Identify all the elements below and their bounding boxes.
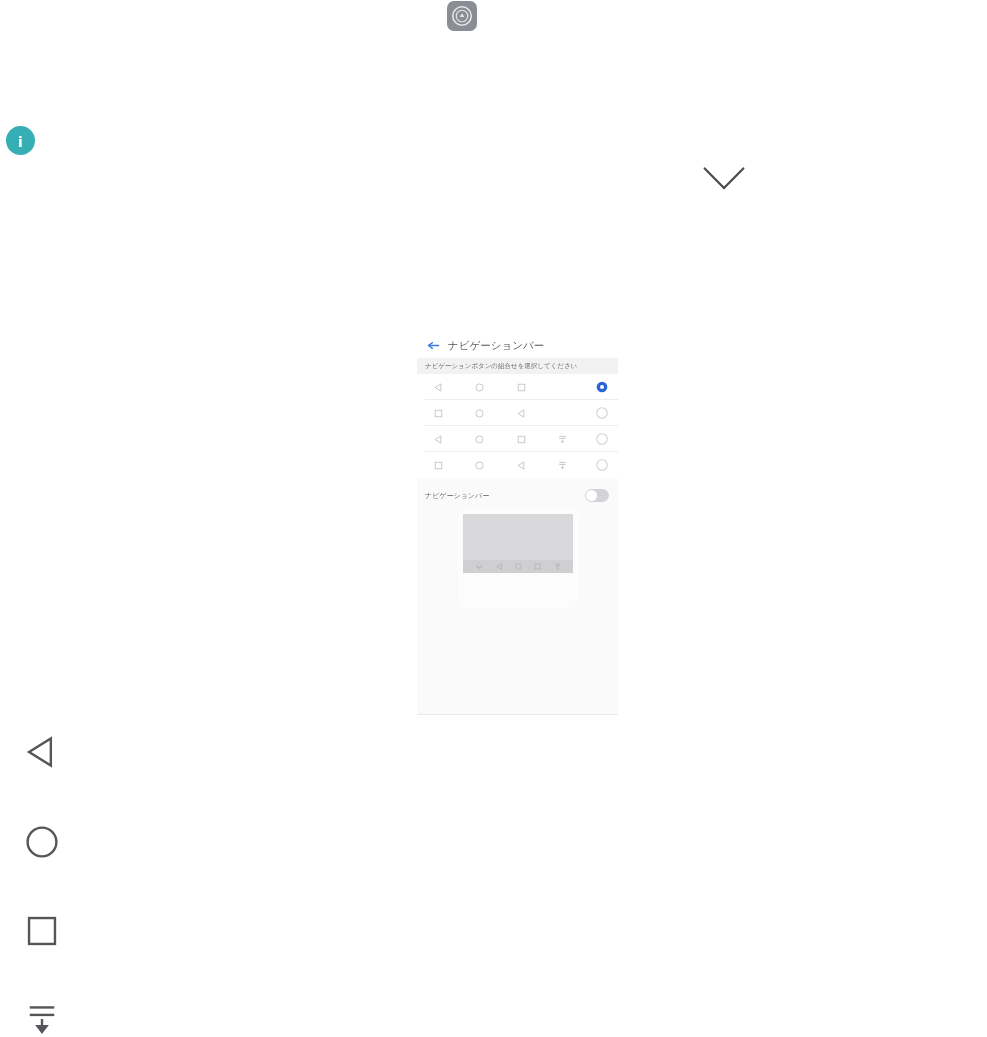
staticText: ナビゲーションボタンの組合せを選択してください [425,362,578,370]
button[interactable]: Home [22,822,62,862]
button[interactable] [417,426,618,452]
button[interactable]: Back [22,732,62,772]
button[interactable]: Hide navigation bar [22,999,62,1037]
button[interactable]: ナビゲーションバー [417,484,618,506]
button[interactable]: Back [426,338,440,352]
button[interactable] [417,400,618,426]
staticText: ナビゲーションバー [448,339,545,352]
button[interactable]: Recent apps [22,911,62,951]
button[interactable] [417,452,618,478]
button[interactable] [417,374,618,400]
staticText: i [18,131,23,151]
button[interactable]: Expand [702,165,746,191]
button[interactable]: Information [6,126,35,155]
button[interactable]: App icon [447,1,477,31]
staticText: ナビゲーションバー [425,491,490,500]
